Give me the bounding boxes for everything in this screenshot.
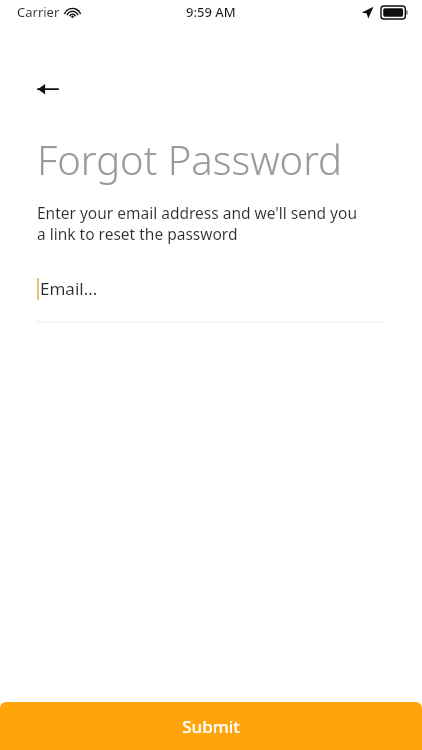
staticText: Carrier xyxy=(17,3,60,21)
staticText: Enter your email address and we'll send … xyxy=(37,202,357,245)
staticText: Forgot Password xyxy=(37,132,343,186)
staticText: Submit xyxy=(182,715,240,738)
button[interactable]: Back xyxy=(26,66,70,110)
button[interactable]: Submit xyxy=(0,702,422,750)
staticText: Email... xyxy=(40,277,98,300)
button[interactable]: Email... xyxy=(0,277,422,323)
staticText: 9:59 AM xyxy=(186,3,236,21)
